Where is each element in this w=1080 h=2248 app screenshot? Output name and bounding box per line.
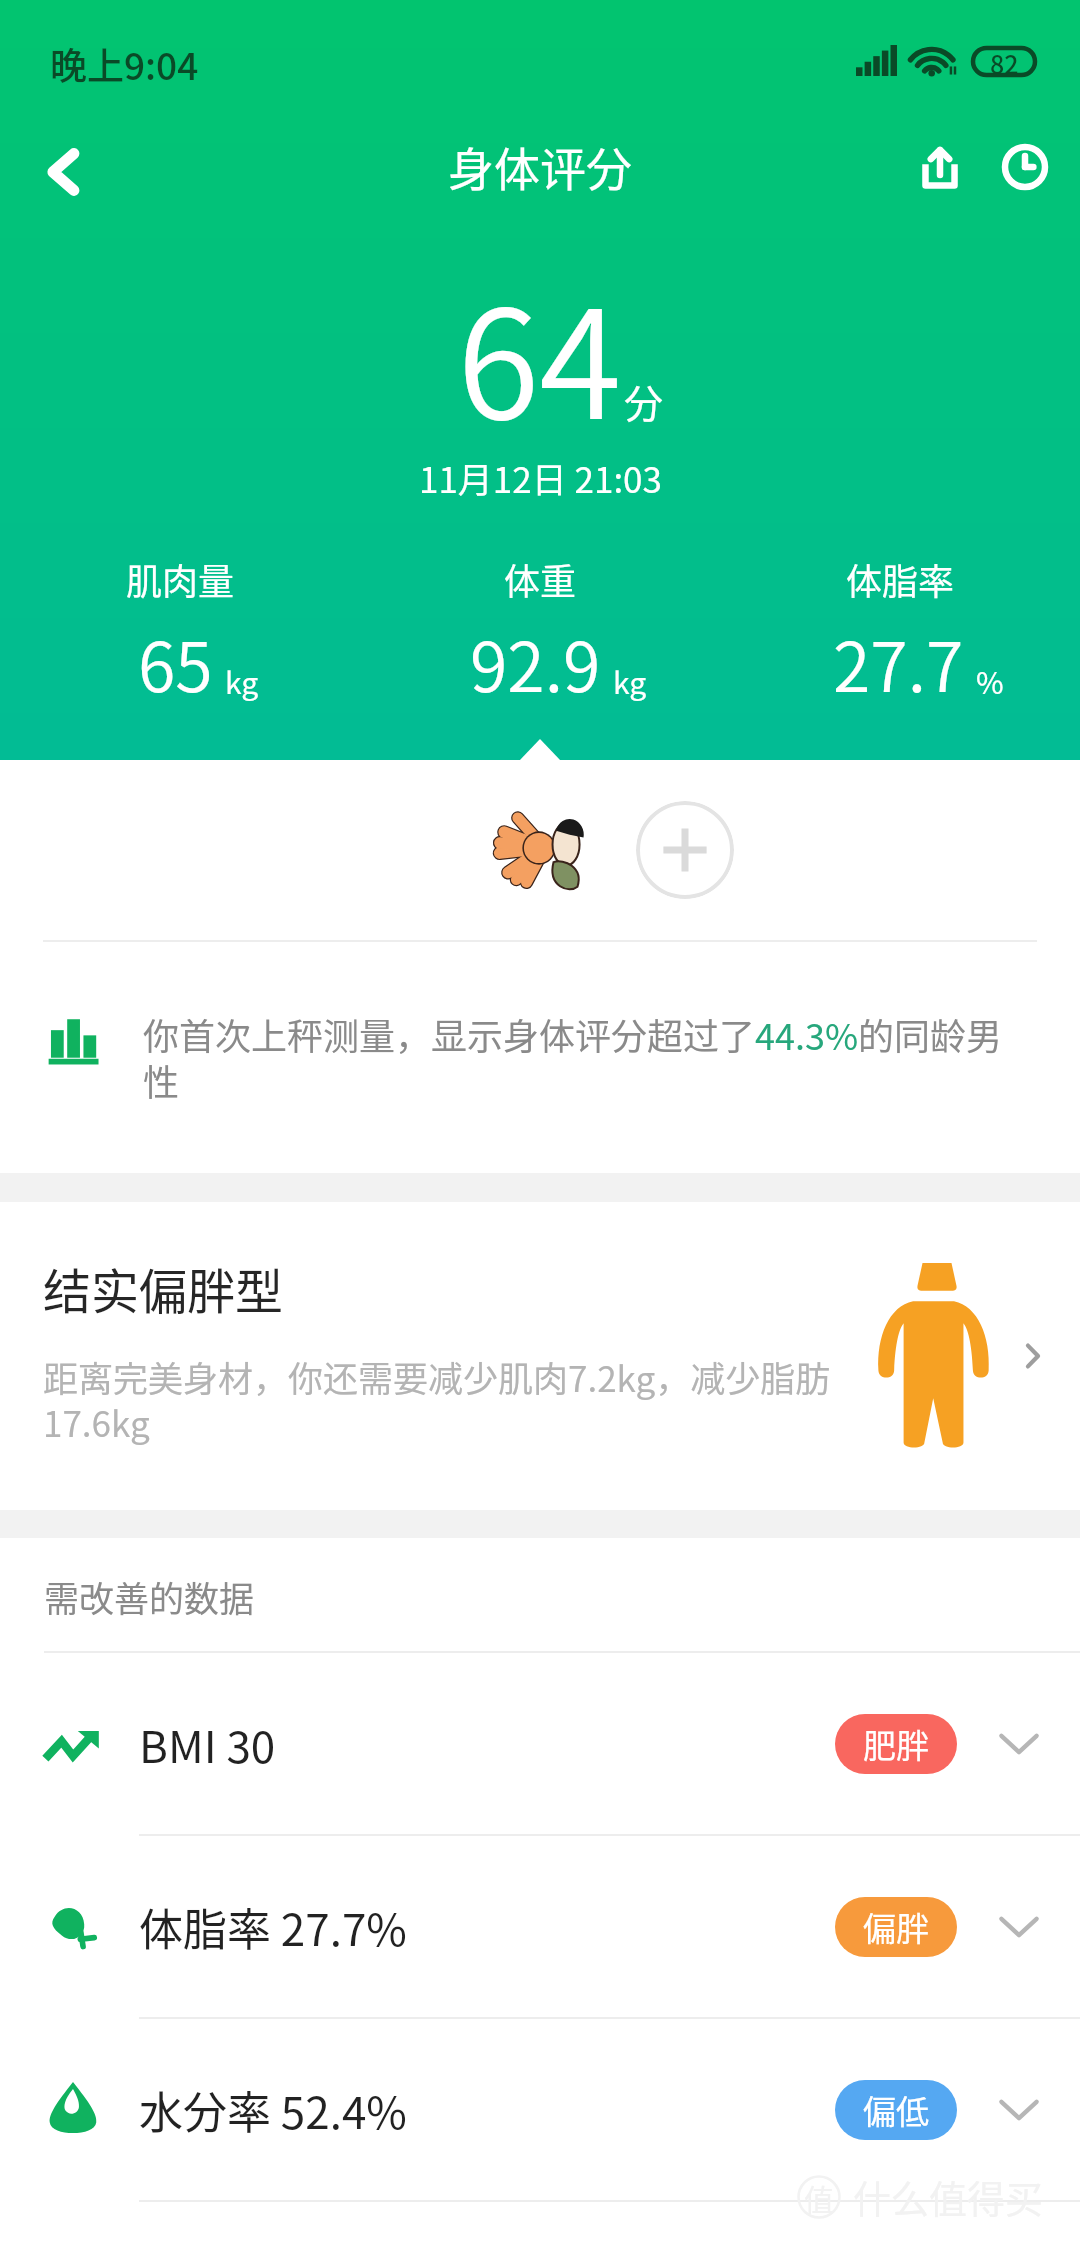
staticText: 值 (804, 2176, 834, 2219)
staticText: 65 (138, 613, 213, 711)
staticText: 偏胖 (863, 1903, 929, 1951)
staticText: 82 (990, 45, 1019, 76)
button[interactable]: 水分率 52.4% (0, 2019, 1080, 2202)
staticText: 你首次上秤测量，显示身体评分超过了44.3%的同龄男性 (143, 1008, 1008, 1106)
staticText: 92.9 (470, 613, 601, 711)
staticText: 分 (624, 373, 664, 429)
button[interactable]: BMI 30 (0, 1653, 1080, 1836)
staticText: 11月12日 21:03 (419, 452, 662, 503)
staticText: kg (225, 659, 259, 702)
staticText: 体脂率 (846, 553, 955, 605)
staticText: 体重 (504, 553, 577, 605)
staticText: 距离完美身材，你还需要减少肌肉7.2kg，减少脂肪17.6kg (43, 1351, 872, 1447)
staticText: 肌肉量 (126, 553, 235, 605)
button[interactable]: Add user (636, 801, 734, 899)
staticText: 水分率 52.4% (139, 2078, 407, 2142)
button[interactable]: 体脂率 27.7% (0, 1836, 1080, 2019)
button[interactable]: 结实偏胖型 (0, 1202, 1080, 1510)
button[interactable]: Back (2, 116, 124, 228)
staticText: BMI 30 (139, 1712, 276, 1776)
staticText: 偏低 (863, 2086, 929, 2134)
button[interactable]: Share (890, 117, 990, 217)
staticText: 结实偏胖型 (43, 1253, 284, 1323)
button[interactable]: History (975, 117, 1075, 217)
staticText: kg (613, 659, 647, 702)
staticText: 体脂率 27.7% (139, 1895, 407, 1959)
button[interactable]: User avatar (487, 804, 591, 892)
staticText: 27.7 (833, 613, 964, 711)
staticText: 什么值得买 (853, 2169, 1044, 2224)
staticText: 身体评分 (448, 133, 632, 200)
staticText: 64 (457, 245, 622, 462)
staticText: 需改善的数据 (44, 1571, 255, 1622)
staticText: 晚上9:04 (50, 37, 199, 91)
staticText: % (976, 659, 1004, 702)
staticText: 肥胖 (863, 1720, 929, 1768)
